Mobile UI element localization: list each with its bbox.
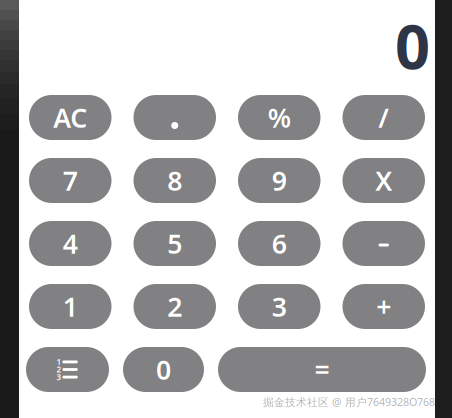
staticText: % xyxy=(268,100,291,135)
staticText: X xyxy=(375,163,392,198)
button[interactable]: AC xyxy=(29,95,111,140)
staticText: 2 xyxy=(167,289,182,324)
button[interactable]: 0 xyxy=(123,347,204,392)
button[interactable]: 8 xyxy=(133,158,216,203)
staticText: 掘金技术社区 @ 用户7649328O768 xyxy=(263,395,435,409)
staticText: 3 xyxy=(56,372,61,382)
button[interactable]: = xyxy=(218,347,426,392)
staticText: AC xyxy=(53,100,87,135)
button[interactable]: 5 xyxy=(133,221,216,266)
staticText: 0 xyxy=(156,352,171,387)
button[interactable]: / xyxy=(342,95,425,140)
button[interactable]: 2 xyxy=(133,284,216,329)
staticText: 5 xyxy=(167,226,182,261)
button[interactable]: X xyxy=(342,158,425,203)
button[interactable]: History xyxy=(26,347,109,392)
button[interactable]: 6 xyxy=(238,221,320,266)
button[interactable]: % xyxy=(238,95,320,140)
button[interactable]: 7 xyxy=(29,158,111,203)
staticText: 1 xyxy=(63,289,78,324)
staticText: 7 xyxy=(63,163,78,198)
staticText: 6 xyxy=(272,226,287,261)
staticText: 3 xyxy=(272,289,287,324)
button[interactable]: + xyxy=(342,284,425,329)
button[interactable]: 4 xyxy=(29,221,111,266)
button[interactable]: 1 xyxy=(29,284,111,329)
staticText: 1 xyxy=(56,357,61,367)
staticText: 4 xyxy=(63,226,78,261)
staticText: = xyxy=(314,352,329,387)
staticText: / xyxy=(378,100,389,135)
button[interactable]: 9 xyxy=(238,158,320,203)
staticText: 8 xyxy=(167,163,182,198)
staticText: 0 xyxy=(395,5,430,86)
staticText: 2 xyxy=(56,364,61,375)
button[interactable]: 3 xyxy=(238,284,320,329)
staticText: + xyxy=(376,289,391,324)
button[interactable] xyxy=(133,95,216,140)
staticText: 9 xyxy=(272,163,287,198)
button[interactable] xyxy=(342,221,425,266)
